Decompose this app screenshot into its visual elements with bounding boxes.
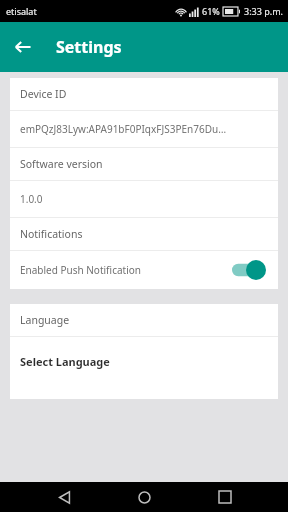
button[interactable]: Enabled Push Notification <box>10 251 278 289</box>
staticText: 3:33 p.m. <box>244 5 283 17</box>
button[interactable]: 1.0.0 <box>10 181 278 217</box>
staticText: Settings <box>56 36 122 58</box>
button[interactable]: Select Language <box>10 337 278 399</box>
staticText: Language <box>20 313 70 327</box>
staticText: Select Language <box>20 354 110 369</box>
button[interactable]: Back <box>47 482 81 512</box>
button[interactable]: Recent apps <box>208 482 242 512</box>
staticText: etisalat <box>6 5 37 17</box>
button[interactable]: emPQzJ83Lyw:APA91bF0PIqxFJS3PEn76Du… <box>10 111 278 147</box>
staticText: Notifications <box>20 227 83 241</box>
staticText: Device ID <box>20 87 67 101</box>
staticText: emPQzJ83Lyw:APA91bF0PIqxFJS3PEn76Du… <box>20 122 227 136</box>
staticText: Enabled Push Notification <box>20 263 141 277</box>
button[interactable]: Enable push notifications <box>232 260 266 280</box>
button[interactable]: Back <box>6 30 40 64</box>
button[interactable]: Home <box>127 482 161 512</box>
staticText: Software version <box>20 157 103 171</box>
staticText: 1.0.0 <box>20 192 43 206</box>
staticText: 61% <box>202 5 220 17</box>
